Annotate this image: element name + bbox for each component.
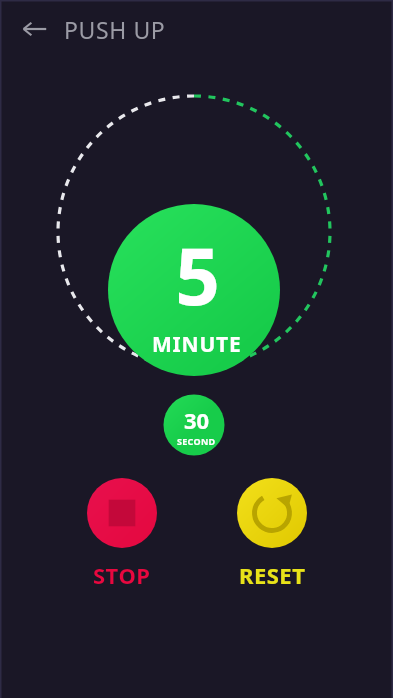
button[interactable]: 30 bbox=[166, 395, 227, 456]
staticText: 5 bbox=[175, 222, 220, 328]
staticText: MINUTE bbox=[152, 330, 242, 359]
button[interactable]: Back bbox=[14, 9, 54, 49]
button[interactable]: 5 bbox=[111, 204, 283, 376]
staticText: PUSH UP bbox=[64, 14, 166, 45]
staticText: RESET bbox=[239, 560, 306, 590]
staticText: STOP bbox=[93, 560, 151, 590]
staticText: SECOND bbox=[177, 435, 216, 447]
button[interactable]: STOP bbox=[47, 478, 197, 590]
button[interactable]: RESET bbox=[197, 478, 347, 590]
staticText: 30 bbox=[184, 405, 210, 435]
